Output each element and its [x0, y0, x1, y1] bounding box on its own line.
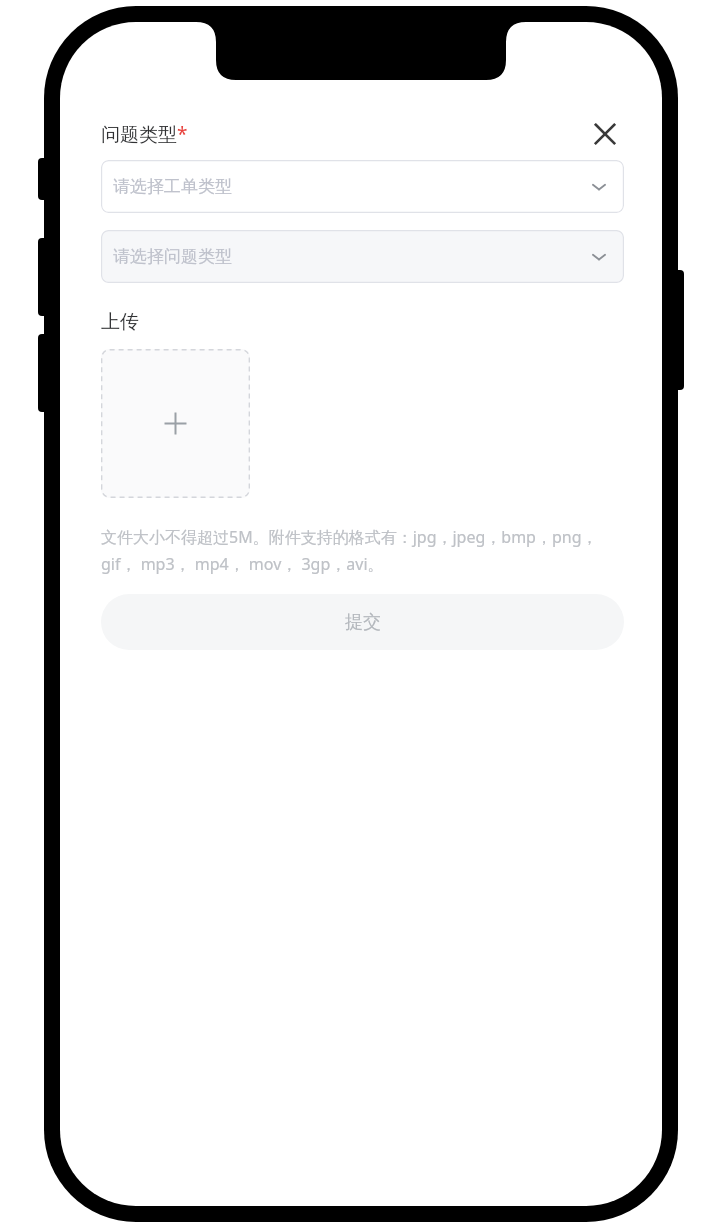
button[interactable]: Add attachment: [101, 349, 250, 498]
staticText: 文件大小不得超过5M。附件支持的格式有：jpg，jpeg，bmp，png，gif…: [101, 526, 626, 575]
staticText: 请选择问题类型: [113, 246, 232, 267]
staticText: 上传: [101, 310, 139, 334]
button[interactable]: Close: [585, 114, 625, 154]
button[interactable]: 提交: [101, 594, 624, 650]
button[interactable]: 请选择工单类型: [101, 160, 624, 213]
button[interactable]: 请选择问题类型: [101, 230, 624, 283]
staticText: 提交: [345, 611, 381, 634]
staticText: 问题类型*: [101, 121, 188, 147]
staticText: 请选择工单类型: [113, 176, 232, 197]
